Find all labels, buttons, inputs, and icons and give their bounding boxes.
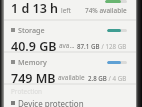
staticText: 87.1 GB [77,42,100,50]
staticText: 749 MB [11,70,56,83]
staticText: available [58,73,85,82]
staticText: / 128 GB [100,42,127,50]
staticText: Protection [11,87,42,96]
button[interactable]: 1 d 13 h [4,0,136,19]
button[interactable]: Storage [4,21,136,51]
staticText: Device protection [18,98,84,107]
staticText: / 4 GB [107,74,127,82]
staticText: left [61,6,71,15]
staticText: 40.9 GB [11,38,57,51]
staticText: 74% available [85,6,127,15]
staticText: Storage [18,25,45,35]
staticText: 1 d 13 h [11,0,59,16]
other: Phone edge [136,0,142,107]
staticText: ava... [59,41,75,50]
staticText: Memory [18,57,47,67]
button[interactable]: Protection [4,85,136,107]
staticText: 2.8 GB [88,74,107,82]
other: Phone edge [0,0,4,107]
button[interactable]: Memory [4,53,136,83]
